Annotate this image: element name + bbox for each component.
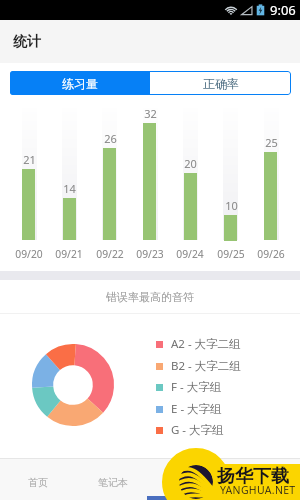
staticText: 21 (23, 152, 36, 167)
staticText: 统计 (178, 476, 198, 489)
button[interactable]: A2 - 大字二组 (150, 334, 290, 354)
staticText: G - 大字组 (171, 422, 224, 438)
staticText: 10 (225, 198, 238, 213)
staticText: 09/21 (55, 247, 83, 261)
button[interactable]: 统计 (150, 459, 225, 500)
button[interactable]: B2 - 大字二组 (150, 356, 290, 376)
button[interactable]: E - 大字组 (150, 399, 290, 419)
staticText: 统计 (13, 33, 41, 51)
staticText: 20 (184, 156, 197, 171)
button[interactable]: G - 大字组 (150, 420, 290, 440)
button[interactable]: F - 大字组 (150, 377, 290, 397)
staticText: 09/20 (15, 247, 43, 261)
button[interactable]: 首页 (0, 459, 75, 500)
staticText: 09/23 (136, 247, 164, 261)
staticText: 26 (104, 131, 117, 146)
staticText: 扬华下载 (217, 465, 289, 488)
button[interactable]: 我的 (225, 459, 300, 500)
staticText: 14 (63, 181, 76, 196)
button[interactable]: 练习量 (10, 71, 150, 95)
staticText: 练习量 (62, 76, 98, 91)
staticText: 错误率最高的音符 (106, 290, 194, 304)
staticText: 32 (144, 106, 157, 121)
staticText: 09/24 (176, 247, 204, 261)
staticText: 09/25 (217, 247, 245, 261)
button[interactable]: 笔记本 (75, 459, 150, 500)
staticText: YANGHUA.NET (220, 483, 296, 497)
staticText: 09/22 (96, 247, 124, 261)
staticText: F - 大字组 (171, 379, 222, 395)
staticText: 正确率 (203, 76, 239, 91)
staticText: 25 (265, 135, 278, 150)
staticText: A2 - 大字二组 (171, 336, 241, 352)
button[interactable]: 正确率 (150, 71, 291, 95)
staticText: 我的 (253, 476, 273, 489)
staticText: 笔记本 (98, 476, 128, 489)
staticText: 首页 (28, 476, 48, 489)
staticText: 09/26 (257, 247, 285, 261)
staticText: E - 大字组 (171, 401, 222, 417)
staticText: 9:06 (270, 1, 296, 19)
staticText: B2 - 大字二组 (171, 358, 241, 374)
